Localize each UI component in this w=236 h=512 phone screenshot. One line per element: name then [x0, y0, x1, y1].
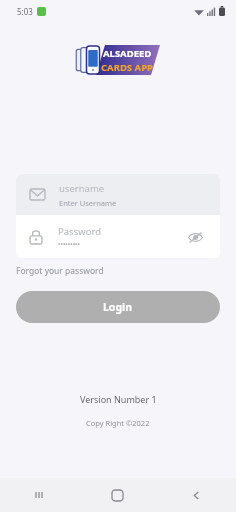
button[interactable]: Home [78, 478, 157, 512]
staticText: Version Number 1 [80, 393, 157, 405]
staticText: ••••••••• [58, 240, 80, 249]
staticText: Copy Right ©2022 [86, 418, 150, 428]
staticText: ALSADEED [103, 47, 152, 60]
button[interactable]: Login [16, 291, 220, 323]
staticText: CARDS APP [101, 61, 153, 74]
staticText: Forgot your password [16, 265, 104, 277]
button[interactable]: username [16, 174, 220, 215]
button[interactable]: Recent apps [0, 478, 78, 512]
button[interactable]: Back [157, 478, 236, 512]
button[interactable]: Password [16, 215, 220, 258]
button[interactable]: Show password [184, 226, 206, 248]
button[interactable]: Forgot your password [16, 262, 104, 280]
staticText: username [59, 182, 105, 195]
staticText: Password [58, 225, 101, 238]
staticText: 5:03 [17, 6, 33, 17]
staticText: Enter Username [59, 198, 117, 208]
staticText: Login [103, 300, 133, 314]
